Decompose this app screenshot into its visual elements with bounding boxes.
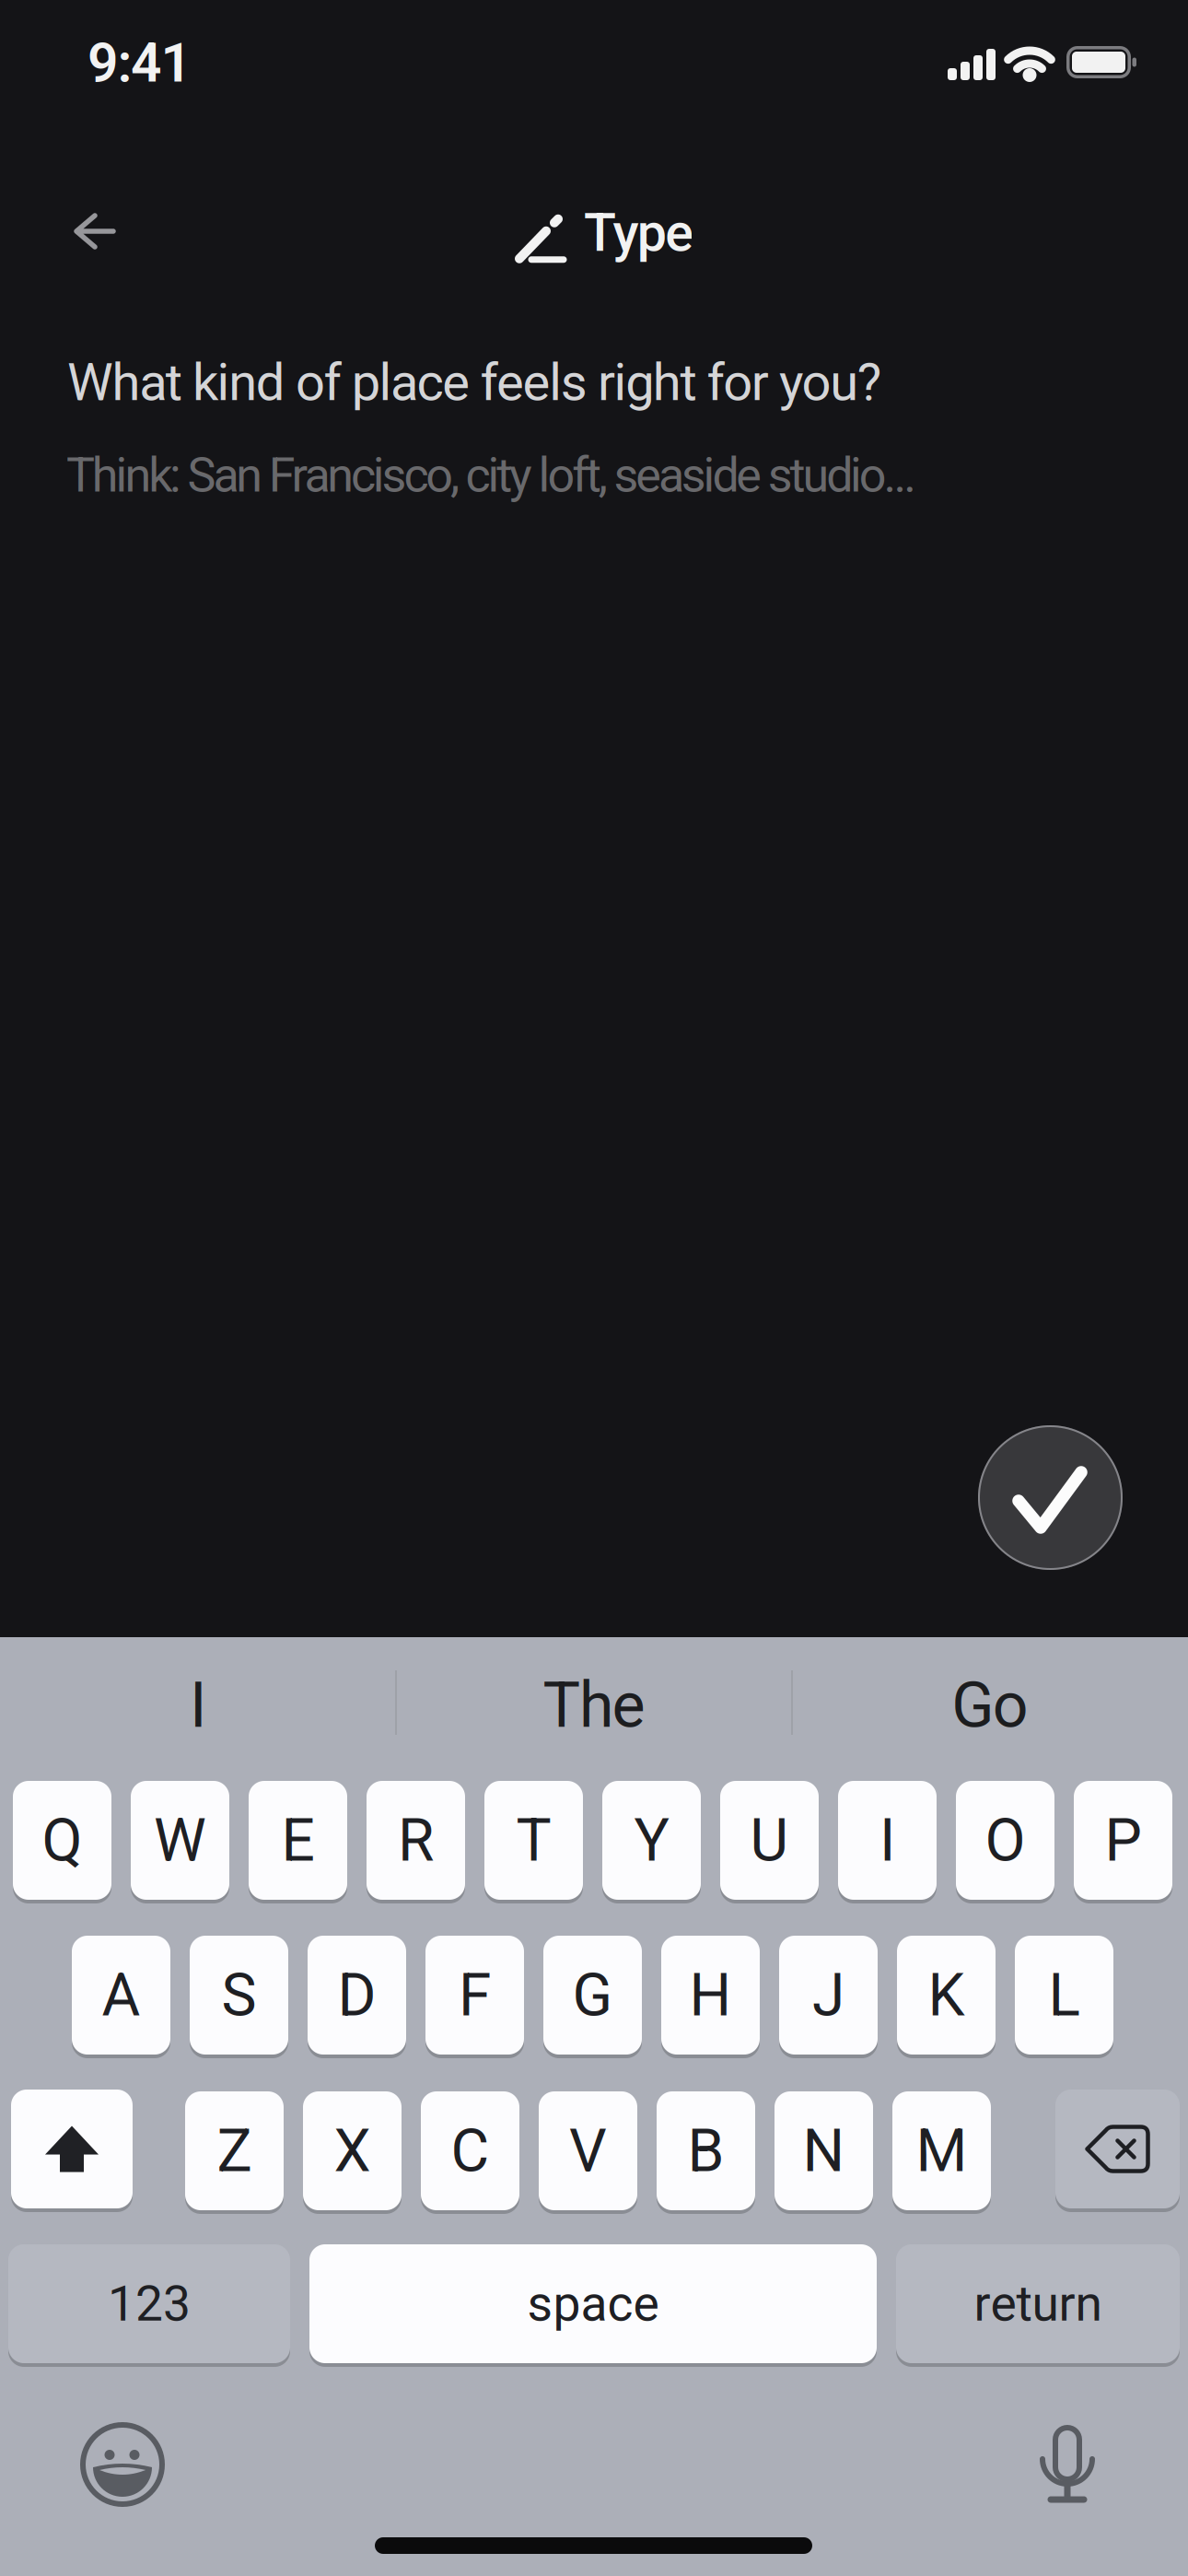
button[interactable]: Shift: [11, 2090, 133, 2208]
staticText: V: [569, 2117, 607, 2184]
staticText: E: [281, 1807, 314, 1874]
button[interactable]: The: [398, 1639, 790, 1772]
button[interactable]: C: [421, 2091, 519, 2210]
button[interactable]: H: [661, 1936, 760, 2055]
button[interactable]: 123: [8, 2244, 290, 2363]
button[interactable]: W: [131, 1781, 229, 1900]
button[interactable]: Back: [54, 191, 135, 272]
button[interactable]: Q: [13, 1781, 111, 1900]
button[interactable]: J: [779, 1936, 878, 2055]
button[interactable]: V: [539, 2091, 637, 2210]
button[interactable]: Done: [978, 1425, 1123, 1570]
button[interactable]: Go: [794, 1639, 1186, 1772]
staticText: return: [974, 2276, 1102, 2332]
staticText: Go: [952, 1670, 1028, 1741]
staticText: 9:41: [87, 32, 192, 94]
staticText: A: [102, 1961, 140, 2029]
staticText: F: [459, 1961, 491, 2029]
staticText: Z: [217, 2117, 252, 2184]
button[interactable]: S: [190, 1936, 288, 2055]
staticText: What kind of place feels right for you?: [67, 353, 881, 412]
staticText: S: [221, 1961, 256, 2029]
button[interactable]: L: [1015, 1936, 1113, 2055]
staticText: Think: San Francisco, city loft, seaside…: [66, 448, 917, 502]
staticText: G: [572, 1961, 613, 2029]
staticText: Q: [42, 1807, 82, 1874]
staticText: Y: [634, 1807, 669, 1874]
button[interactable]: R: [367, 1781, 465, 1900]
button[interactable]: E: [249, 1781, 347, 1900]
staticText: M: [916, 2117, 967, 2184]
staticText: space: [527, 2276, 659, 2332]
button[interactable]: T: [484, 1781, 583, 1900]
button[interactable]: I: [2, 1639, 394, 1772]
staticText: I: [879, 1807, 895, 1874]
button[interactable]: B: [657, 2091, 755, 2210]
button[interactable]: D: [308, 1936, 406, 2055]
staticText: The: [543, 1670, 645, 1741]
staticText: I: [190, 1670, 206, 1741]
staticText: B: [687, 2117, 724, 2184]
button[interactable]: M: [892, 2091, 991, 2210]
button[interactable]: I: [838, 1781, 937, 1900]
staticText: O: [985, 1807, 1025, 1874]
staticText: W: [154, 1807, 206, 1874]
button[interactable]: U: [720, 1781, 819, 1900]
button[interactable]: P: [1074, 1781, 1172, 1900]
button[interactable]: space: [309, 2244, 877, 2363]
button[interactable]: Delete: [1055, 2090, 1180, 2208]
staticText: Type: [584, 203, 694, 263]
button[interactable]: Dictation: [1012, 2409, 1123, 2520]
staticText: X: [334, 2117, 371, 2184]
button[interactable]: Emoji: [67, 2409, 178, 2520]
staticText: P: [1105, 1807, 1141, 1874]
button[interactable]: N: [775, 2091, 873, 2210]
button[interactable]: X: [303, 2091, 402, 2210]
button[interactable]: Y: [602, 1781, 701, 1900]
staticText: C: [451, 2117, 489, 2184]
button[interactable]: F: [425, 1936, 524, 2055]
staticText: T: [516, 1807, 551, 1874]
staticText: L: [1048, 1961, 1080, 2029]
button[interactable]: return: [896, 2244, 1180, 2363]
button[interactable]: O: [956, 1781, 1054, 1900]
staticText: R: [398, 1807, 434, 1874]
button[interactable]: K: [897, 1936, 996, 2055]
button[interactable]: Z: [185, 2091, 284, 2210]
button[interactable]: G: [543, 1936, 642, 2055]
staticText: H: [689, 1961, 732, 2029]
staticText: U: [750, 1807, 789, 1874]
staticText: N: [803, 2117, 845, 2184]
staticText: K: [928, 1961, 965, 2029]
button[interactable]: A: [72, 1936, 170, 2055]
staticText: 123: [108, 2276, 191, 2332]
staticText: J: [812, 1961, 844, 2029]
staticText: D: [338, 1961, 376, 2029]
